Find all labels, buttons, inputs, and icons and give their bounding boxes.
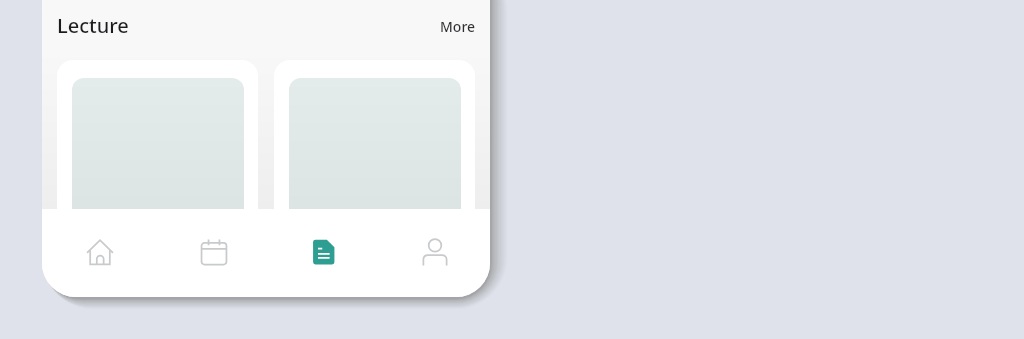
button[interactable]	[57, 60, 258, 209]
staticText: More	[440, 17, 476, 36]
button[interactable]: More	[426, 11, 490, 44]
button[interactable]: Calendar	[156, 209, 268, 295]
button[interactable]	[274, 60, 475, 209]
staticText: Lecture	[57, 12, 129, 39]
button[interactable]: Documents	[268, 209, 380, 295]
button[interactable]: Home	[44, 209, 156, 295]
button[interactable]: Profile	[380, 209, 490, 295]
